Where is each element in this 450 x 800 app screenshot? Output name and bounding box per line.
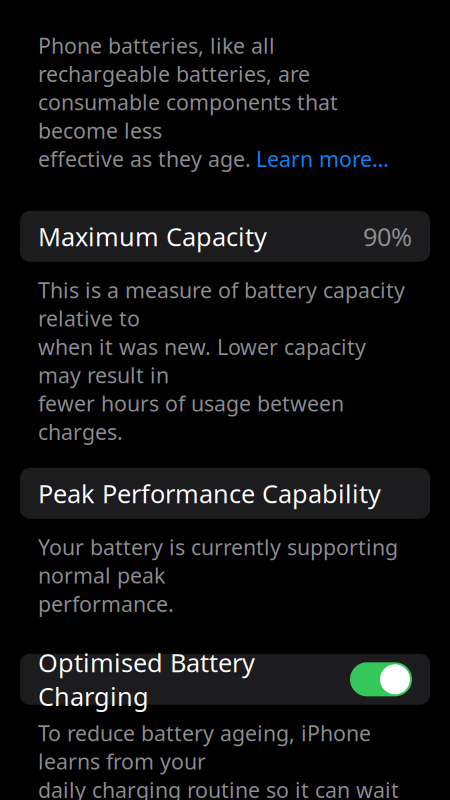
staticText: Learn more… <box>256 144 389 173</box>
staticText: This is a measure of battery capacity re… <box>38 276 405 332</box>
staticText: when it was new. Lower capacity may resu… <box>38 332 366 389</box>
staticText: Optimised Battery Charging <box>38 646 255 713</box>
staticText: Peak Performance Capability <box>38 476 381 510</box>
staticText: consumable components that become less <box>38 88 338 145</box>
staticText: Your battery is currently supporting nor… <box>38 533 398 589</box>
staticText: Phone batteries, like all rechargeable b… <box>38 31 310 88</box>
staticText: effective as they age. <box>38 144 251 173</box>
staticText: 90% <box>363 219 412 253</box>
staticText: performance. <box>38 589 174 618</box>
button[interactable]: Optimised Battery Charging <box>0 654 450 705</box>
staticText: daily charging routine so it can wait to… <box>38 775 399 800</box>
staticText: To reduce battery ageing, iPhone learns … <box>38 719 371 775</box>
staticText: fewer hours of usage between charges. <box>38 389 344 446</box>
button[interactable]: Learn more… <box>256 144 389 173</box>
staticText: Maximum Capacity <box>38 219 267 253</box>
button[interactable]: Peak Performance Capability <box>0 468 450 519</box>
